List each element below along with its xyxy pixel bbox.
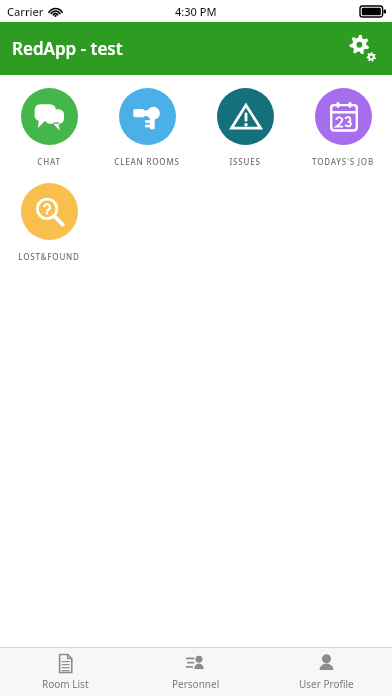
staticText: LOST&FOUND — [18, 251, 80, 262]
button[interactable]: CLEAN ROOMS — [98, 87, 196, 168]
button[interactable]: CHAT — [0, 87, 98, 168]
staticText: 4:30 PM — [175, 4, 217, 19]
button[interactable]: Personnel — [130, 648, 261, 696]
staticText: RedApp - test — [12, 37, 123, 60]
button[interactable]: User Profile — [261, 648, 392, 696]
staticText: Personnel — [172, 677, 220, 691]
button[interactable]: TODAYS'S JOB — [294, 87, 392, 168]
staticText: Room List — [42, 677, 89, 691]
staticText: Carrier — [7, 4, 44, 19]
staticText: CHAT — [37, 156, 61, 167]
staticText: TODAYS'S JOB — [312, 156, 374, 167]
button[interactable]: Settings — [340, 26, 386, 72]
staticText: ISSUES — [229, 156, 261, 167]
button[interactable]: ISSUES — [196, 87, 294, 168]
staticText: User Profile — [299, 677, 354, 691]
staticText: CLEAN ROOMS — [114, 156, 180, 167]
button[interactable]: LOST&FOUND — [0, 182, 98, 263]
button[interactable]: Room List — [0, 648, 130, 696]
